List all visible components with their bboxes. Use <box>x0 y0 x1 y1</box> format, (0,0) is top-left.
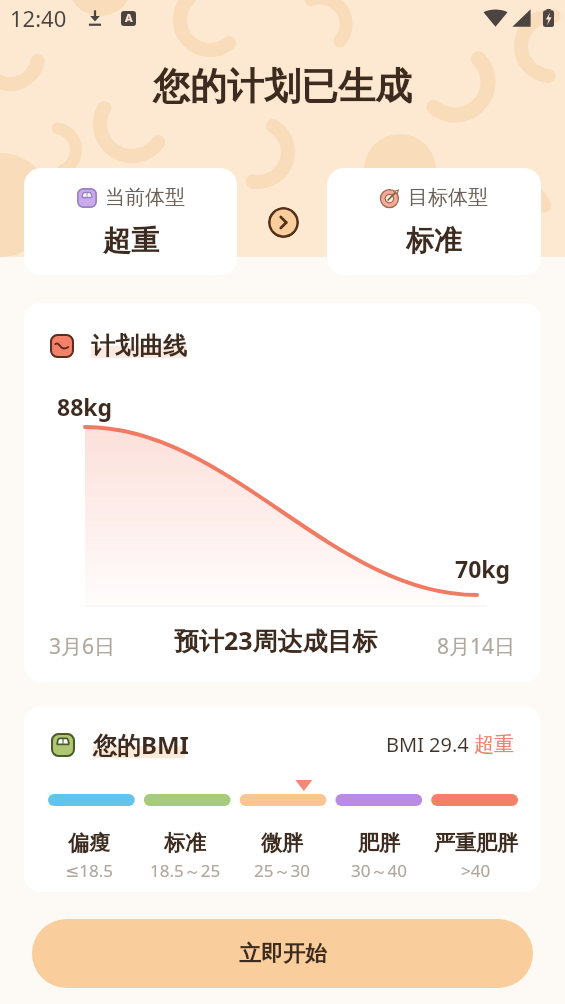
staticText: 当前体型 <box>105 185 185 210</box>
staticText: 30～40 <box>351 859 407 882</box>
button[interactable]: 目标体型 <box>327 168 541 275</box>
staticText: 目标体型 <box>408 185 488 210</box>
staticText: 立即开始 <box>239 940 327 968</box>
button[interactable]: 立即开始 <box>32 919 533 988</box>
button[interactable]: 下一步 <box>268 207 299 238</box>
staticText: 8月14日 <box>437 632 516 661</box>
staticText: 您的BMI <box>93 728 189 761</box>
staticText: 70kg <box>455 553 511 584</box>
staticText: 肥胖 <box>358 830 400 856</box>
staticText: 3月6日 <box>49 632 116 661</box>
staticText: A <box>125 11 133 25</box>
staticText: 标准 <box>406 223 462 258</box>
staticText: 超重 <box>474 732 514 757</box>
staticText: BMI 29.4 <box>386 731 474 758</box>
staticText: 预计23周达成目标 <box>174 623 378 657</box>
staticText: >40 <box>461 859 491 882</box>
staticText: 12:40 <box>10 3 67 33</box>
button[interactable]: 当前体型 <box>24 168 237 275</box>
staticText: ≤18.5 <box>65 859 113 882</box>
staticText: 计划曲线 <box>91 331 187 361</box>
staticText: 您的计划已生成 <box>0 63 565 110</box>
staticText: 标准 <box>164 830 206 856</box>
staticText: 88kg <box>57 391 113 422</box>
staticText: 25～30 <box>254 859 310 882</box>
staticText: 偏瘦 <box>68 830 110 856</box>
staticText: 微胖 <box>261 830 303 856</box>
staticText: 超重 <box>103 223 159 258</box>
staticText: 18.5～25 <box>150 859 221 882</box>
staticText: 严重肥胖 <box>434 830 518 856</box>
